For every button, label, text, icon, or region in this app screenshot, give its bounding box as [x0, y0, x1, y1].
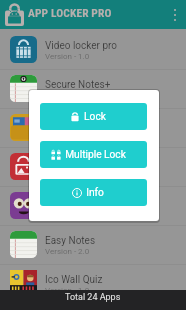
- button[interactable]: More options: [164, 0, 186, 29]
- staticText: Multiple Lock: [65, 149, 126, 161]
- staticText: Version - 1.0: [45, 286, 90, 295]
- staticText: Lock: [84, 111, 106, 123]
- staticText: Secure Notes+: [45, 79, 111, 91]
- staticText: Total 24 Apps: [65, 292, 121, 303]
- staticText: Video locker pro: [45, 40, 118, 52]
- staticText: APP LOCKER PRO: [28, 6, 112, 19]
- staticText: Version - 2.0: [45, 247, 90, 256]
- staticText: Easy Notes: [45, 235, 96, 247]
- staticText: Photo Locker: [45, 157, 104, 169]
- staticText: Funny Face: [45, 196, 96, 208]
- button[interactable]: Multiple Lock: [40, 141, 147, 168]
- button[interactable]: Video locker pro: [0, 31, 186, 69]
- staticText: Info: [86, 187, 104, 199]
- staticText: Ico Wall Quiz: [45, 274, 103, 286]
- button[interactable]: Info: [40, 179, 147, 206]
- button[interactable]: Ultimate Photo: [0, 109, 186, 147]
- staticText: Version - 1.0: [45, 52, 90, 61]
- button[interactable]: Secure Notes+: [0, 70, 186, 108]
- button[interactable]: Funny Face: [0, 187, 186, 225]
- button[interactable]: Photo Locker: [0, 148, 186, 186]
- button[interactable]: Easy Notes: [0, 226, 186, 264]
- button[interactable]: Lock: [40, 103, 147, 130]
- button[interactable]: Ico Wall Quiz: [0, 265, 186, 303]
- staticText: Ultimate Photo: [45, 118, 112, 130]
